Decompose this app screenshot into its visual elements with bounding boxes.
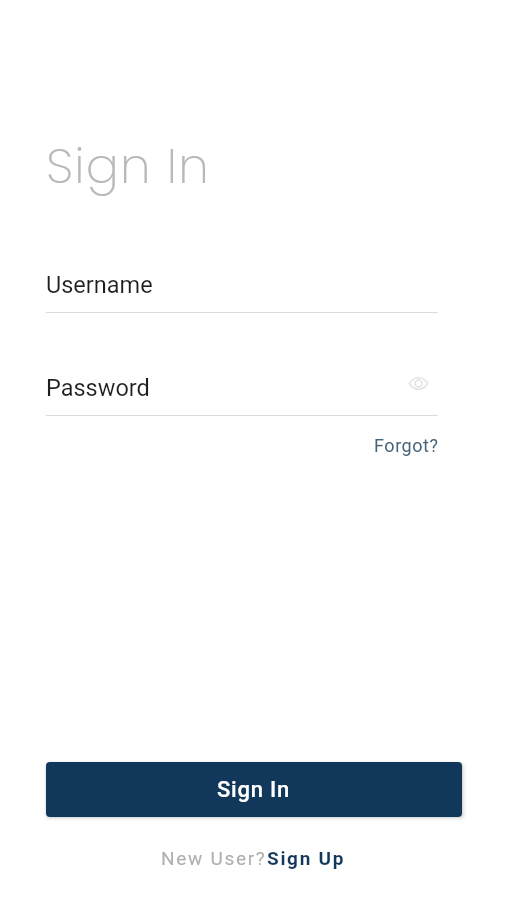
staticText: New User? (161, 847, 267, 869)
button[interactable]: Password (46, 370, 438, 416)
button[interactable]: Show password (405, 370, 431, 396)
button[interactable]: Forgot? (374, 435, 439, 456)
staticText: Forgot? (374, 435, 439, 456)
button[interactable]: New User? (161, 847, 346, 869)
staticText: Password (46, 374, 150, 402)
staticText: Sign In (217, 777, 291, 803)
staticText: Sign In (46, 132, 210, 201)
button[interactable]: Sign In (46, 762, 462, 817)
staticText: Username (46, 271, 153, 299)
staticText: Sign Up (267, 847, 346, 869)
button[interactable]: Username (46, 267, 438, 313)
